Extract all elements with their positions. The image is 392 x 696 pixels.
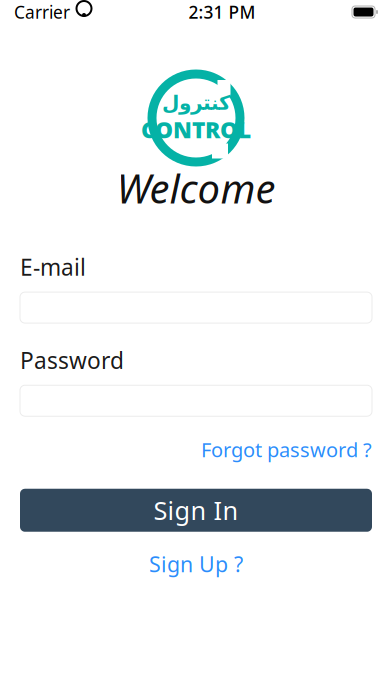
staticText: Forgot password ? [201, 436, 372, 463]
staticText: Carrier [14, 0, 70, 23]
button[interactable]: Sign Up ? [20, 544, 372, 584]
staticText: CONTROL [141, 114, 251, 144]
staticText: E-mail [20, 252, 86, 282]
button[interactable]: Forgot password ? [201, 432, 372, 467]
button[interactable]: Sign In [20, 489, 372, 532]
staticText: Sign In [153, 493, 238, 527]
staticText: Password [20, 345, 124, 375]
staticText: Sign Up ? [149, 550, 243, 578]
staticText: كنترول [161, 92, 230, 114]
staticText: 2:31 PM [188, 0, 255, 23]
staticText: Welcome [116, 161, 275, 214]
